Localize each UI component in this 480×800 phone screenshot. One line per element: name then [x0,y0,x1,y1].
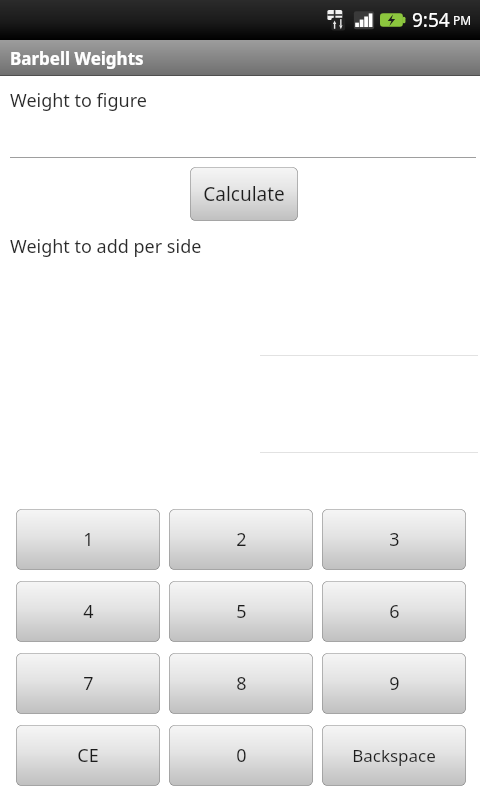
staticText: Barbell Weights [10,47,144,70]
staticText: Calculate [203,181,285,207]
staticText: PM [453,12,472,28]
staticText: 4 [83,599,94,624]
staticText: 1 [83,527,94,552]
button[interactable]: 2 [169,509,313,570]
staticText: Weight to add per side [10,234,202,259]
staticText: 2 [236,527,247,552]
button[interactable]: 0 [169,725,313,786]
button[interactable]: 9 [322,653,466,714]
button[interactable]: Backspace [322,725,466,786]
staticText: CE [77,743,99,768]
button[interactable]: CE [16,725,160,786]
button[interactable]: 7 [16,653,160,714]
staticText: 3 [389,527,400,552]
staticText: 9 [389,671,400,696]
button[interactable]: 3 [322,509,466,570]
staticText: 9:54 [412,7,450,33]
staticText: 7 [83,671,94,696]
staticText: 5 [236,599,247,624]
staticText: 0 [236,743,247,768]
button[interactable]: 1 [16,509,160,570]
button[interactable]: 4 [16,581,160,642]
staticText: 6 [389,599,400,624]
button[interactable]: 8 [169,653,313,714]
button[interactable]: 6 [322,581,466,642]
staticText: Backspace [352,744,436,767]
staticText: 8 [236,671,247,696]
staticText: Weight to figure [10,88,147,113]
button[interactable]: 5 [169,581,313,642]
button[interactable]: Calculate [190,167,298,221]
